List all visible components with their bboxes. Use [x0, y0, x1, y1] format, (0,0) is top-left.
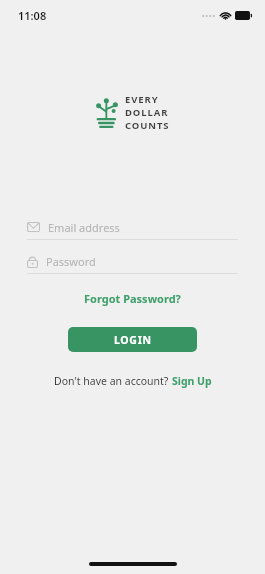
staticText: DOLLAR [125, 106, 169, 119]
staticText: LOGIN [114, 333, 152, 347]
staticText: Sign Up [172, 374, 212, 388]
staticText: Forgot Password? [84, 291, 181, 306]
staticText: Email address [48, 220, 120, 235]
staticText: COUNTS [125, 119, 170, 132]
staticText: Don't have an account? [54, 374, 172, 388]
button[interactable]: Email address [27, 215, 238, 240]
button[interactable]: Sign Up [172, 374, 212, 388]
staticText: 11:08 [18, 8, 47, 23]
staticText: EVERY [125, 93, 159, 106]
button[interactable]: LOGIN [68, 327, 197, 352]
staticText: Password [46, 254, 96, 269]
button[interactable]: Forgot Password? [78, 288, 187, 309]
button[interactable]: Password [27, 249, 238, 274]
